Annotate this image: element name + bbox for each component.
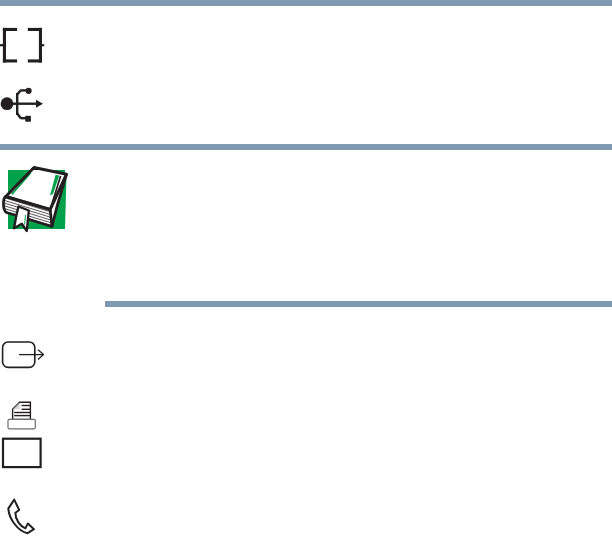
button[interactable]: USB connection — [0, 84, 48, 126]
button[interactable]: Print — [0, 398, 44, 432]
button[interactable]: Output — [0, 338, 48, 372]
button[interactable]: Call — [0, 496, 40, 536]
button[interactable]: Display — [0, 434, 46, 472]
button[interactable]: Manual — [0, 164, 72, 236]
button[interactable]: Brackets — [0, 24, 48, 66]
